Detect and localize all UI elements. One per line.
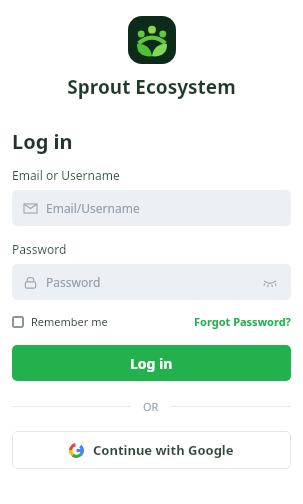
button[interactable]: Password xyxy=(12,264,291,300)
staticText: OR xyxy=(143,399,159,414)
staticText: Email/Username xyxy=(46,200,140,216)
staticText: Log in xyxy=(130,354,173,373)
staticText: Log in xyxy=(12,128,73,155)
staticText: Email or Username xyxy=(12,167,120,183)
button[interactable]: Forgot Password? xyxy=(194,314,291,329)
button[interactable]: Show password xyxy=(261,273,279,291)
staticText: Forgot Password? xyxy=(194,314,291,329)
button[interactable]: Email/Username xyxy=(12,190,291,226)
button[interactable]: Log in xyxy=(12,345,291,381)
staticText: Sprout Ecosystem xyxy=(0,74,303,100)
staticText: Continue with Google xyxy=(93,441,234,459)
staticText: Password xyxy=(12,241,67,257)
staticText: Password xyxy=(46,274,101,290)
button[interactable]: Continue with Google xyxy=(12,431,291,469)
button[interactable]: Remember me xyxy=(12,314,108,329)
staticText: Remember me xyxy=(31,314,108,329)
